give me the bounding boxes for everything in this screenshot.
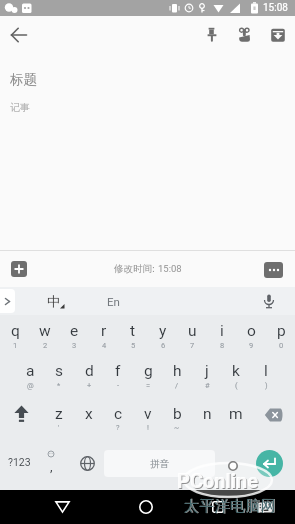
button[interactable]: 标题 (0, 63, 295, 95)
button[interactable]: n (192, 403, 222, 425)
staticText: 太平洋电脑网 (184, 497, 277, 516)
staticText: 15:08 (263, 2, 288, 14)
button[interactable] (255, 287, 283, 315)
button[interactable]: w (30, 320, 60, 342)
staticText: - (117, 381, 120, 390)
staticText: 标题 (10, 71, 37, 88)
button[interactable]: i (207, 320, 237, 342)
button[interactable] (197, 20, 226, 49)
button[interactable]: 记事 (0, 95, 295, 119)
button[interactable]: v (133, 403, 163, 425)
staticText: z (55, 405, 63, 423)
button[interactable]: p (266, 320, 295, 342)
staticText: j (205, 362, 209, 380)
button[interactable]: y (148, 320, 178, 342)
staticText: 记事 (10, 101, 30, 114)
button[interactable]: g (133, 360, 163, 382)
staticText: 拼音 (150, 458, 169, 470)
button[interactable]: j (192, 360, 222, 382)
button[interactable] (201, 490, 235, 524)
button[interactable]: b (162, 403, 192, 425)
staticText: 修改时间: (114, 263, 158, 275)
staticText: + (87, 381, 92, 390)
staticText: / (175, 381, 179, 390)
staticText: e (70, 322, 79, 340)
button[interactable]: q (0, 320, 30, 342)
button[interactable]: u (177, 320, 207, 342)
button[interactable]: En (95, 287, 131, 315)
button[interactable] (45, 490, 79, 524)
button[interactable] (4, 401, 38, 425)
staticText: = (146, 381, 151, 390)
staticText: 太平洋电脑网 (183, 497, 276, 516)
button[interactable]: z (44, 403, 74, 425)
staticText: v (144, 405, 152, 423)
button[interactable]: f (103, 360, 133, 382)
button[interactable]: o (236, 320, 266, 342)
staticText: 15:08 (158, 263, 182, 274)
staticText: c (114, 405, 123, 423)
button[interactable]: k (221, 360, 251, 382)
staticText: l (264, 362, 268, 380)
button[interactable]: x (74, 403, 104, 425)
staticText: d (85, 362, 94, 380)
button[interactable]: s (44, 360, 74, 382)
button[interactable] (264, 262, 283, 278)
staticText: 0 (279, 341, 284, 350)
staticText: @ (27, 381, 34, 390)
button[interactable]: r (89, 320, 119, 342)
staticText: r (101, 322, 107, 340)
button[interactable] (2, 18, 36, 52)
staticText: PConline (178, 470, 260, 493)
button[interactable] (255, 403, 291, 427)
staticText: # (205, 381, 210, 390)
staticText: PConline (177, 469, 259, 492)
staticText: ! (147, 423, 149, 432)
button[interactable] (0, 289, 15, 313)
button[interactable]: h (162, 360, 192, 382)
staticText: k (232, 362, 240, 380)
button[interactable] (129, 490, 163, 524)
staticText: ( (235, 381, 238, 390)
staticText: ) (265, 381, 268, 390)
button[interactable]: c (103, 403, 133, 425)
staticText: p (277, 322, 286, 340)
staticText: 6 (161, 341, 166, 350)
staticText: x (85, 405, 93, 423)
button[interactable] (70, 443, 104, 483)
button[interactable] (256, 450, 283, 477)
button[interactable] (11, 261, 27, 277)
staticText: En (107, 295, 120, 308)
staticText: 8 (220, 341, 225, 350)
button[interactable]: m (221, 403, 251, 425)
button[interactable]: , (40, 449, 62, 483)
button[interactable]: 拼音 (104, 450, 215, 477)
staticText: ' (58, 423, 60, 432)
staticText: s (55, 362, 63, 380)
staticText: w (39, 322, 51, 340)
staticText: ? (116, 423, 120, 432)
button[interactable]: d (74, 360, 104, 382)
staticText: ~ (174, 423, 180, 432)
staticText: 7 (190, 341, 195, 350)
staticText: 中 (47, 293, 61, 310)
button[interactable]: 中 (30, 287, 78, 315)
staticText: 4 (102, 341, 107, 350)
staticText: 1 (13, 341, 18, 350)
staticText: 2 (43, 341, 48, 350)
staticText: ?123 (8, 456, 31, 468)
button[interactable]: e (59, 320, 89, 342)
staticText: g (144, 362, 153, 380)
staticText: n (203, 405, 212, 423)
button[interactable]: a (15, 360, 45, 382)
staticText: b (173, 405, 182, 423)
button[interactable] (230, 20, 259, 49)
button[interactable]: l (251, 360, 281, 382)
button[interactable]: ?123 (2, 442, 36, 482)
staticText: u (188, 322, 197, 340)
staticText: f (115, 362, 121, 380)
button[interactable] (263, 20, 292, 49)
button[interactable]: t (118, 320, 148, 342)
staticText: 5 (131, 341, 136, 350)
button[interactable] (248, 490, 282, 524)
